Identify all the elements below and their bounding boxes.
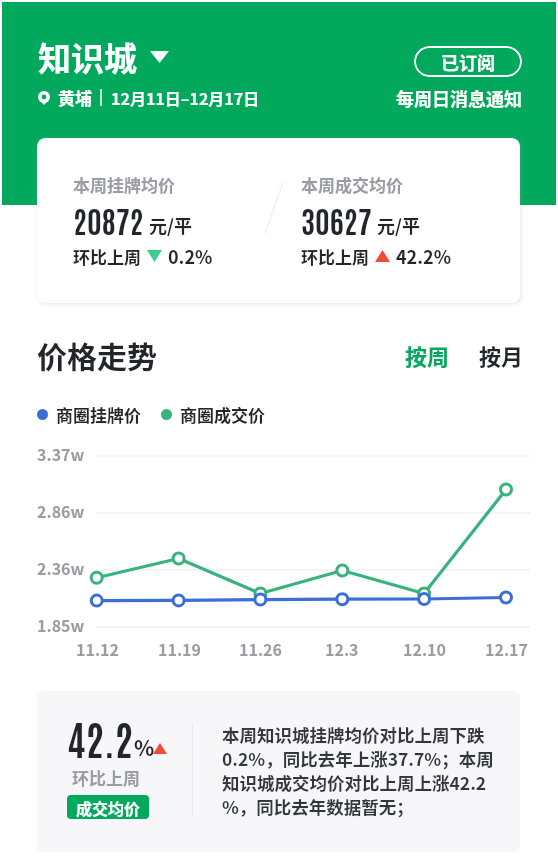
staticText: 11.19 [158, 637, 201, 660]
staticText: 按周 [405, 339, 450, 371]
staticText: 本周知识城挂牌均价对比上周下跌 0.2%，同比去年上涨37.7%；本周 知识城成… [222, 722, 494, 819]
staticText: 42.2% [396, 243, 452, 269]
staticText: 1.85w [37, 613, 85, 636]
staticText: 42.2 [67, 712, 134, 764]
staticText: 每周日消息通知 [396, 85, 522, 111]
staticText: 2.86w [37, 499, 85, 522]
staticText: 商圈成交价 [180, 402, 265, 427]
staticText: 本周挂牌均价 [73, 172, 175, 197]
staticText: 环比上周 [73, 244, 141, 269]
staticText: 价格走势 [37, 333, 157, 376]
button[interactable]: 成交均价 [67, 795, 149, 819]
staticText: 按月 [479, 339, 524, 371]
staticText: 20872 [73, 200, 144, 239]
staticText: 元/平 [149, 212, 192, 238]
staticText: 12.3 [325, 637, 359, 660]
staticText: 知识城 [38, 33, 137, 81]
staticText: 商圈挂牌价 [56, 402, 141, 427]
staticText: 已订阅 [441, 49, 495, 75]
staticText: 3.37w [37, 442, 85, 465]
staticText: 本周成交均价 [301, 172, 403, 197]
staticText: 黄埔 [58, 85, 92, 110]
button[interactable]: 按月 [473, 335, 530, 375]
staticText: 11.12 [76, 637, 119, 660]
staticText: 12.17 [485, 637, 528, 660]
staticText: 2.36w [37, 556, 85, 579]
staticText: 12月11日–12月17日 [111, 86, 260, 109]
staticText: 11.26 [239, 637, 282, 660]
button[interactable]: 按周 [399, 335, 456, 375]
staticText: 12.10 [403, 637, 446, 660]
staticText: 环比上周 [301, 244, 369, 269]
staticText: 元/平 [377, 212, 420, 238]
staticText: 环比上周 [72, 765, 140, 790]
staticText: % [134, 732, 155, 762]
staticText: 成交均价 [76, 796, 141, 819]
staticText: 0.2% [168, 243, 213, 269]
button[interactable]: 已订阅 [414, 46, 522, 77]
staticText: 30627 [301, 200, 372, 239]
